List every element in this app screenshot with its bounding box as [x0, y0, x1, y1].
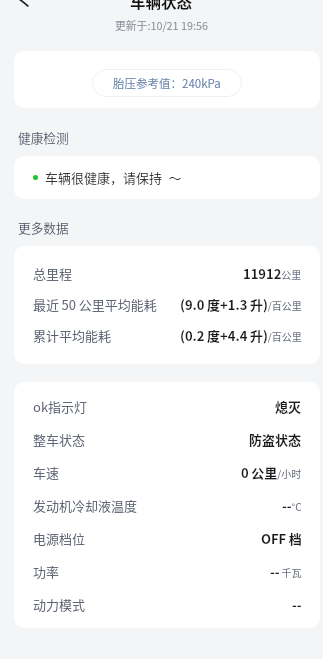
staticText: 动力模式 — [33, 595, 86, 614]
staticText: 11912公里 — [243, 264, 302, 283]
staticText: 车辆很健康，请保持 ～ — [45, 168, 182, 187]
staticText: --°C — [282, 496, 302, 515]
staticText: 更新于:10/21 19:56 — [115, 17, 208, 33]
staticText: 总里程 — [33, 264, 73, 283]
staticText: OFF 档 — [261, 529, 302, 548]
button[interactable]: 电源档位 — [14, 522, 320, 555]
staticText: 车速 — [33, 463, 60, 482]
staticText: 电源档位 — [33, 529, 86, 548]
staticText: 防盗状态 — [249, 430, 302, 449]
button[interactable]: 胎压参考值：240kPa — [92, 69, 242, 97]
staticText: 累计平均能耗 — [33, 326, 112, 345]
button[interactable]: ok指示灯 — [14, 390, 320, 423]
staticText: ok指示灯 — [33, 397, 88, 416]
button[interactable]: 车速 — [14, 456, 320, 489]
staticText: (9.0 度+1.3 升)/百公里 — [180, 295, 302, 314]
staticText: 0 公里/小时 — [241, 463, 302, 482]
button[interactable]: 整车状态 — [14, 423, 320, 456]
button[interactable]: 总里程 — [14, 258, 320, 289]
staticText: (0.2 度+4.4 升)/百公里 — [180, 326, 302, 345]
staticText: 车辆状态 — [130, 0, 193, 12]
staticText: 功率 — [33, 562, 60, 581]
staticText: 最近 50 公里平均能耗 — [33, 295, 157, 314]
staticText: 熄灭 — [275, 397, 302, 416]
button[interactable]: 动力模式 — [14, 588, 320, 620]
staticText: -- 千瓦 — [270, 562, 302, 581]
button[interactable]: 最近 50 公里平均能耗 — [14, 289, 320, 320]
staticText: 发动机冷却液温度 — [33, 496, 138, 515]
button[interactable]: 累计平均能耗 — [14, 320, 320, 351]
button[interactable]: 发动机冷却液温度 — [14, 489, 320, 522]
staticText: 更多数据 — [18, 218, 69, 236]
staticText: 健康检测 — [18, 128, 69, 146]
button[interactable]: 功率 — [14, 555, 320, 588]
staticText: 整车状态 — [33, 430, 86, 449]
staticText: 胎压参考值：240kPa — [113, 75, 221, 92]
staticText: -- — [292, 595, 302, 614]
